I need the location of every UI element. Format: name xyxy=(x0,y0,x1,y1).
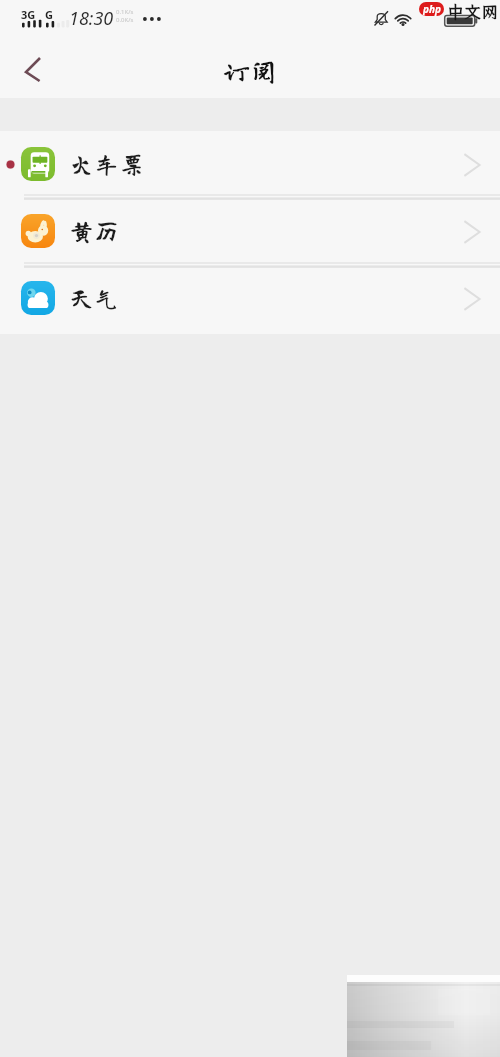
staticText: 黄历 xyxy=(69,218,120,243)
staticText: 订阅 xyxy=(223,57,277,84)
button[interactable]: 天气 xyxy=(0,265,500,332)
staticText: 天气 xyxy=(69,285,120,310)
staticText: php xyxy=(423,2,441,16)
staticText: G xyxy=(45,7,53,22)
staticText: 中文网 xyxy=(447,0,498,22)
button[interactable]: 黄历 xyxy=(0,198,500,265)
staticText: 18:30 xyxy=(69,6,114,31)
staticText: 0.0K/s xyxy=(116,16,134,24)
staticText: 0.1K/s xyxy=(116,8,134,16)
button[interactable]: Back xyxy=(8,36,58,98)
button[interactable]: 火车票 xyxy=(0,131,500,198)
staticText: 火车票 xyxy=(69,151,145,176)
staticText: 3G xyxy=(21,7,36,22)
